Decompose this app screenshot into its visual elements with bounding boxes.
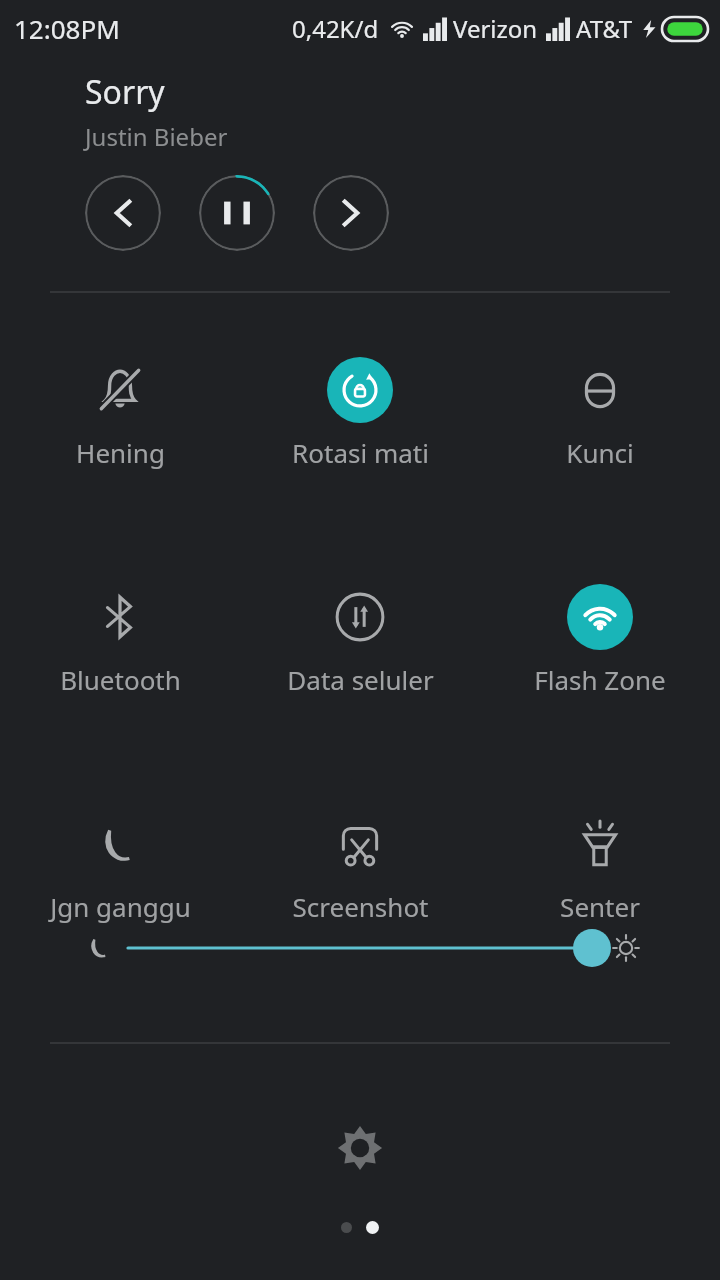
button[interactable]: Previous bbox=[85, 175, 161, 251]
button[interactable]: Screenshot bbox=[240, 809, 480, 926]
button[interactable]: Pause bbox=[199, 175, 275, 251]
staticText: Sorry bbox=[85, 70, 165, 114]
staticText: Kunci bbox=[566, 435, 634, 470]
staticText: Screenshot bbox=[292, 889, 429, 924]
button[interactable]: Settings bbox=[322, 1110, 398, 1186]
staticText: Senter bbox=[560, 889, 640, 924]
staticText: AT&T bbox=[576, 12, 632, 45]
staticText: Bluetooth bbox=[60, 662, 181, 697]
button[interactable]: Kunci bbox=[480, 355, 720, 472]
staticText: Rotasi mati bbox=[292, 435, 429, 470]
button[interactable]: Jgn ganggu bbox=[0, 809, 240, 926]
button[interactable]: Hening bbox=[0, 355, 240, 472]
button[interactable]: Senter bbox=[480, 809, 720, 926]
button[interactable]: Rotasi mati bbox=[240, 355, 480, 472]
staticText: Hening bbox=[76, 435, 165, 470]
staticText: Flash Zone bbox=[534, 662, 666, 697]
button[interactable]: Data seluler bbox=[240, 582, 480, 699]
staticText: 0,42K/d bbox=[292, 12, 379, 45]
staticText: Justin Bieber bbox=[85, 120, 228, 153]
button[interactable] bbox=[128, 926, 610, 970]
button[interactable]: Flash Zone bbox=[480, 582, 720, 699]
staticText: 12:08PM bbox=[14, 11, 120, 46]
staticText: Verizon bbox=[453, 12, 538, 45]
button[interactable]: Next bbox=[313, 175, 389, 251]
staticText: Data seluler bbox=[287, 662, 434, 697]
staticText: Jgn ganggu bbox=[50, 889, 191, 924]
button[interactable]: Bluetooth bbox=[0, 582, 240, 699]
